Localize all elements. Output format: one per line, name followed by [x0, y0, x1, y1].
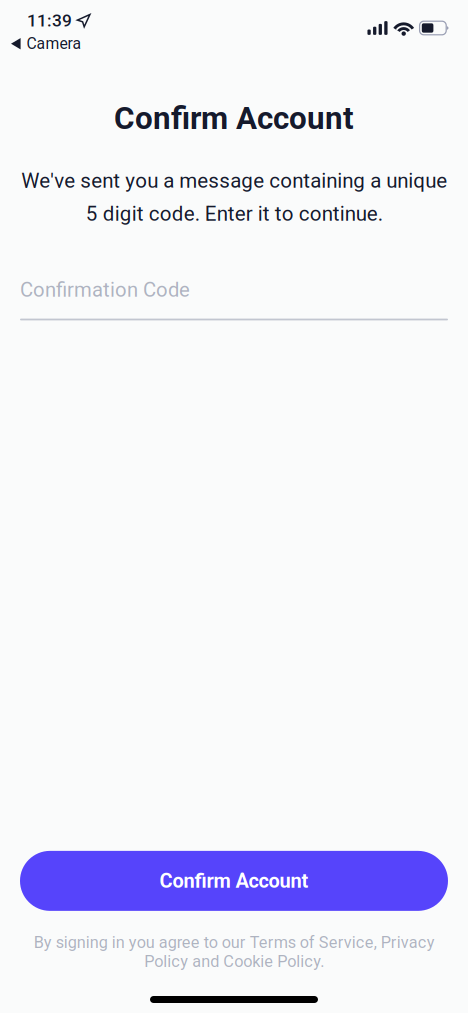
staticText: By signing in you agree to our Terms of … [33, 933, 434, 971]
staticText: Confirmation Code [20, 278, 190, 302]
staticText: Camera [27, 34, 82, 53]
button[interactable]: Back to Camera [0, 30, 93, 57]
staticText: 11:39 [27, 10, 72, 31]
staticText: We've sent you a message containing a un… [21, 169, 447, 226]
staticText: Confirm Account [114, 100, 354, 137]
button[interactable]: Confirm Account [20, 851, 448, 911]
staticText: Confirm Account [159, 869, 308, 893]
